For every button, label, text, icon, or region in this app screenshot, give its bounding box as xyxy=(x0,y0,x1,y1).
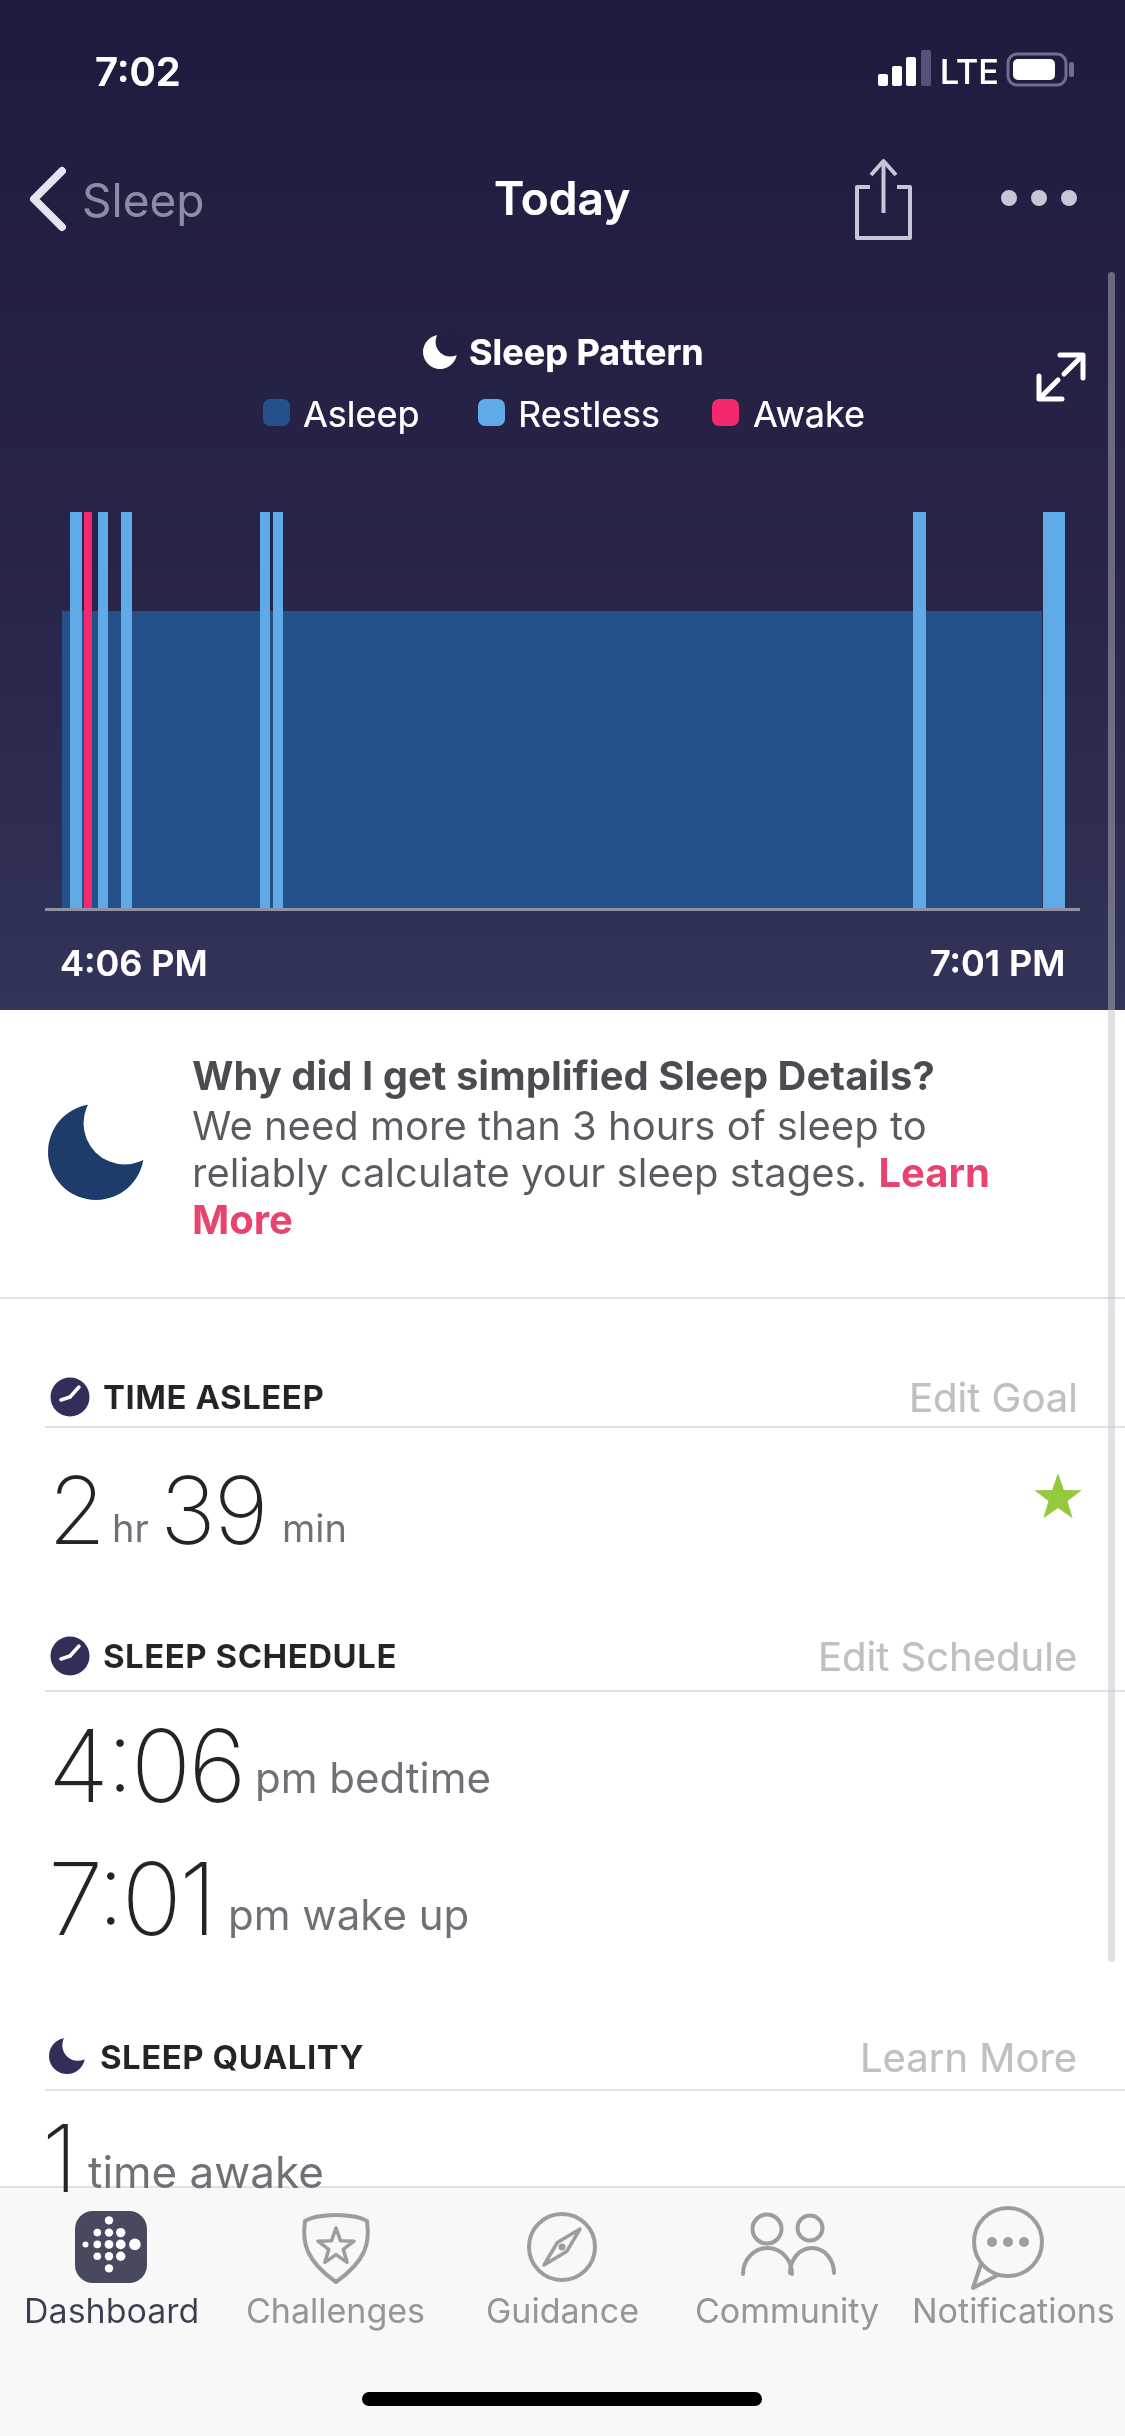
button[interactable]: Edit Schedule xyxy=(818,1632,1078,1680)
staticText: 2 xyxy=(48,1453,105,1567)
staticText: 1 xyxy=(42,2101,78,2215)
staticText: LTE xyxy=(940,51,999,92)
staticText: 4:06 xyxy=(48,1705,244,1826)
button[interactable] xyxy=(225,2190,450,2390)
staticText: TIME ASLEEP xyxy=(103,1377,325,1417)
button[interactable]: Edit Goal xyxy=(909,1373,1078,1421)
staticText: 7:01 xyxy=(48,1838,215,1959)
staticText: min xyxy=(282,1505,347,1551)
staticText: 4:06 PM xyxy=(60,941,208,985)
staticText: Challenges xyxy=(246,2290,426,2331)
staticText: Community xyxy=(695,2290,880,2331)
staticText: 7:01 PM xyxy=(930,941,1066,985)
button[interactable] xyxy=(900,2190,1125,2390)
button[interactable] xyxy=(845,150,925,250)
staticText: Guidance xyxy=(486,2290,639,2331)
button[interactable] xyxy=(990,160,1090,240)
staticText: pm bedtime xyxy=(255,1752,492,1803)
staticText: Awake xyxy=(753,392,866,436)
button[interactable]: We need more than 3 hours of sleep to re… xyxy=(192,1101,990,1243)
staticText: Notifications xyxy=(912,2290,1115,2331)
staticText: pm wake up xyxy=(228,1889,470,1940)
staticText: Sleep xyxy=(82,172,205,228)
staticText: hr xyxy=(112,1505,149,1551)
staticText: Restless xyxy=(518,392,661,436)
staticText: Why did I get simplified Sleep Details? xyxy=(192,1051,935,1099)
staticText: Sleep Pattern xyxy=(469,330,704,374)
button[interactable] xyxy=(1025,340,1095,410)
button[interactable] xyxy=(20,160,220,240)
button[interactable] xyxy=(675,2190,900,2390)
button[interactable]: Learn More xyxy=(860,2033,1078,2081)
staticText: time awake xyxy=(88,2145,324,2198)
staticText: Today xyxy=(494,170,631,226)
staticText: 39 xyxy=(160,1453,267,1567)
button[interactable] xyxy=(450,2190,675,2390)
staticText: Dashboard xyxy=(24,2290,200,2331)
staticText: 7:02 xyxy=(95,47,181,95)
staticText: SLEEP SCHEDULE xyxy=(103,1636,397,1676)
staticText: SLEEP QUALITY xyxy=(100,2037,365,2077)
staticText: Asleep xyxy=(303,392,420,436)
button[interactable] xyxy=(0,2190,225,2390)
